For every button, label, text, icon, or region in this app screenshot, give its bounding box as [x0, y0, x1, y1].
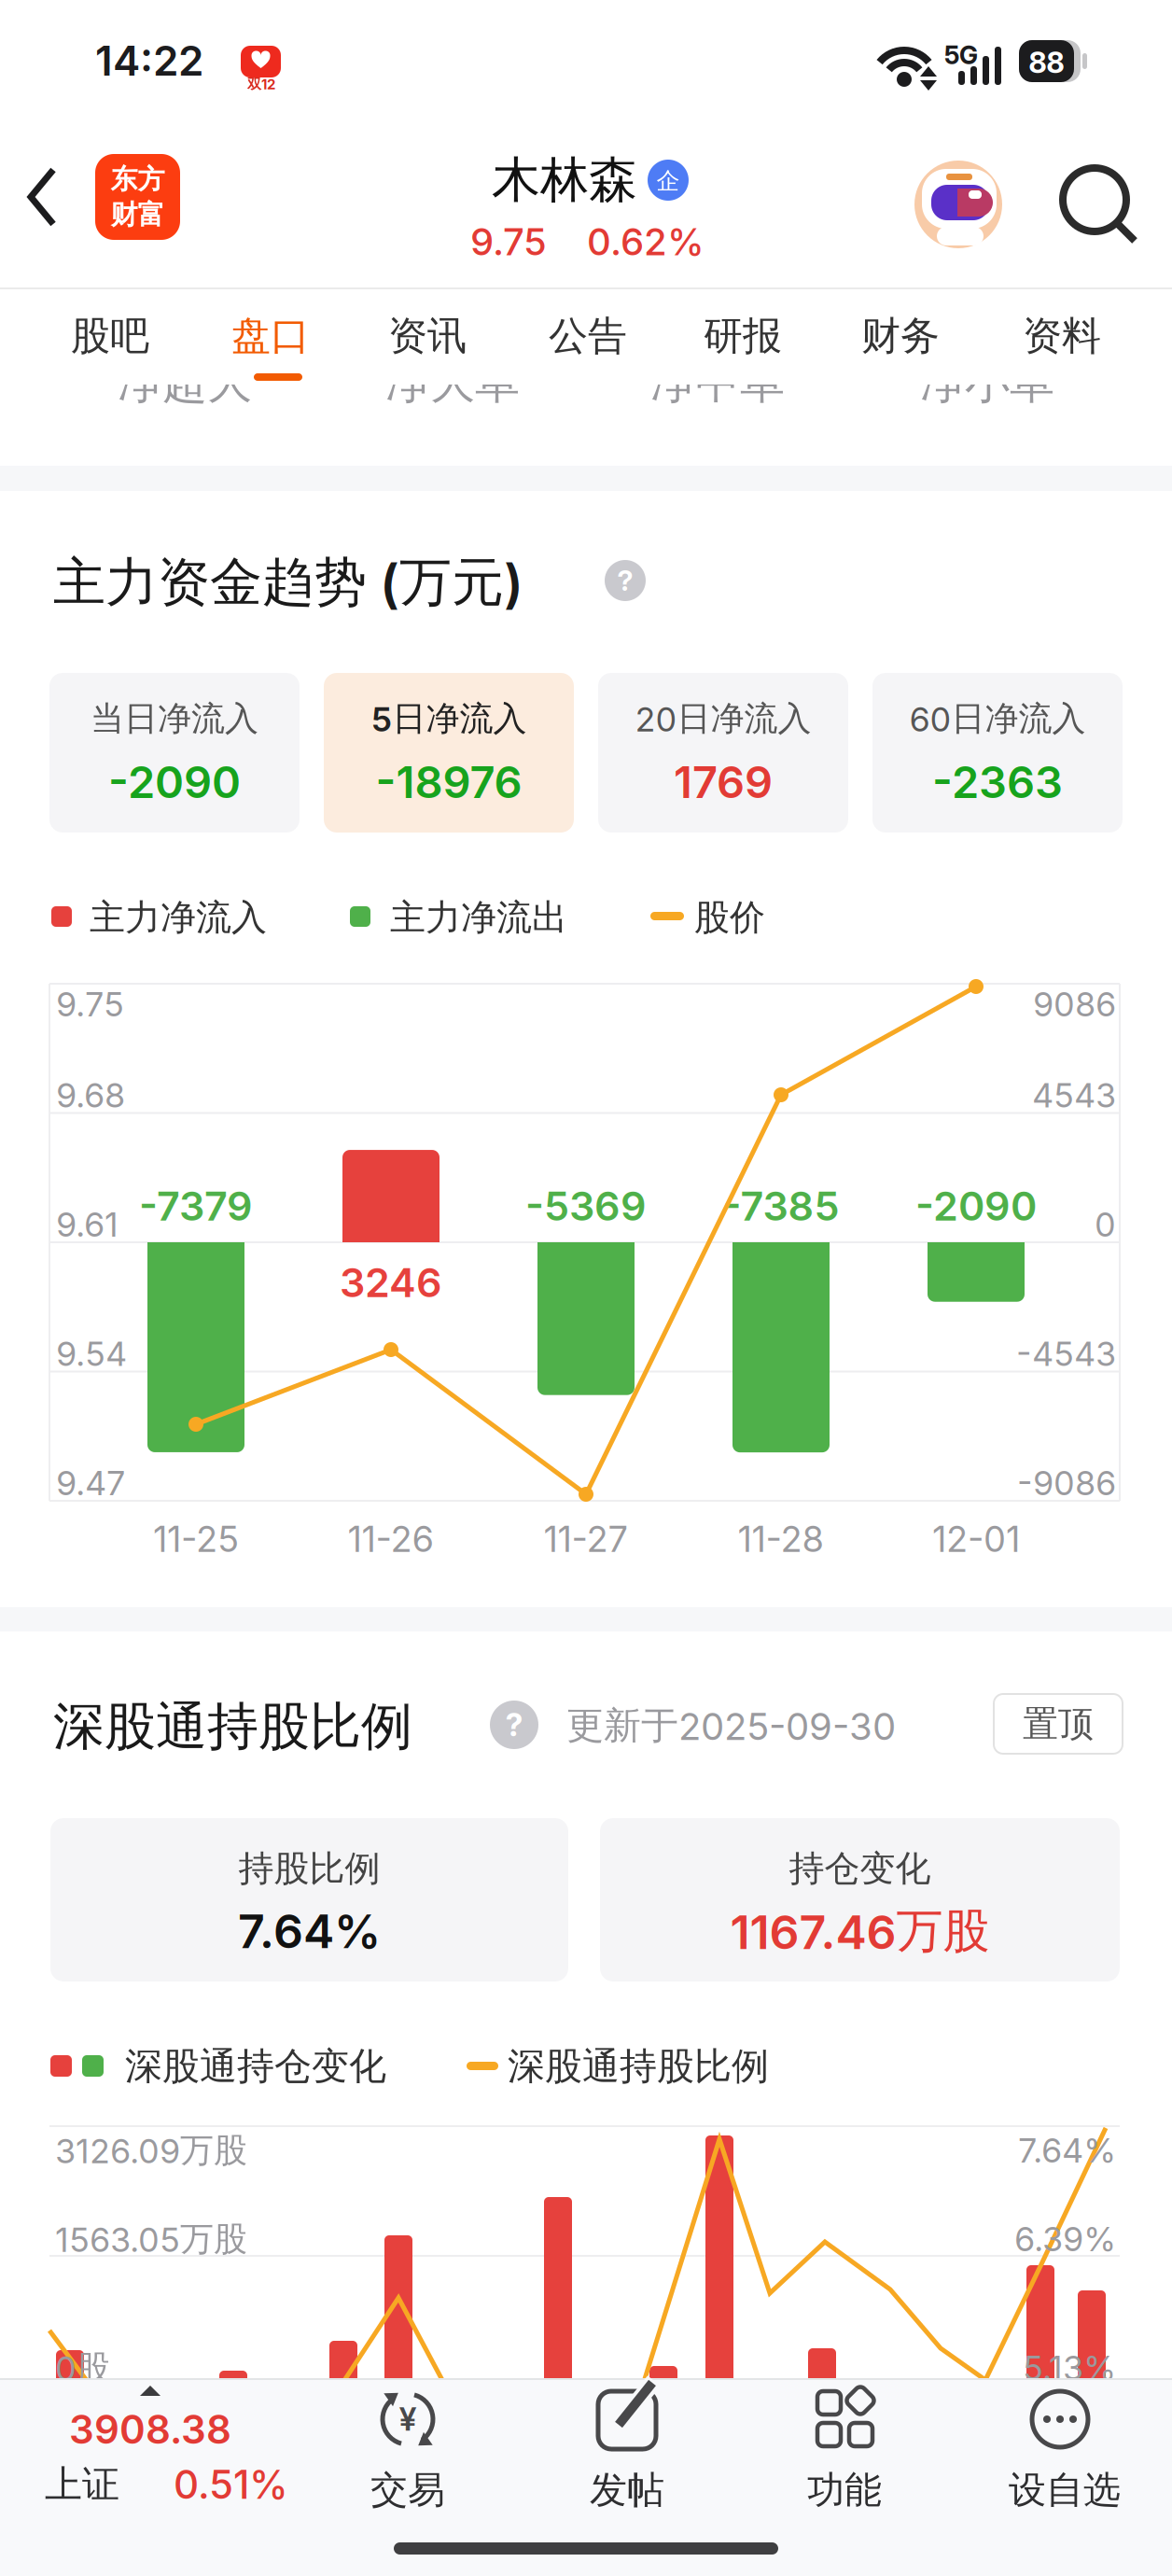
staticText: 9.47	[56, 1463, 125, 1503]
staticText: 交易	[370, 2467, 445, 2513]
staticText: 东方	[111, 163, 165, 196]
staticText: -18976	[376, 756, 522, 808]
staticText: ?	[617, 564, 633, 597]
staticText: 企	[656, 167, 680, 195]
staticText: 0股	[55, 2347, 110, 2388]
staticText: -7385	[723, 1182, 839, 1229]
button[interactable]: AI 助手	[0, 0, 1172, 2576]
staticText: 9.75	[56, 984, 124, 1024]
staticText: 11-26	[348, 1518, 434, 1560]
staticText: 净小单	[920, 355, 1054, 410]
staticText: 12-01	[932, 1518, 1020, 1560]
button[interactable]: 股吧	[0, 0, 1172, 2576]
staticText: 60日净流入	[909, 698, 1086, 739]
button[interactable]: 当日净流入	[0, 0, 1172, 2576]
staticText: -2090	[108, 756, 241, 808]
staticText: 持股比例	[238, 1847, 380, 1890]
button[interactable]: 5日净流入	[0, 0, 1172, 2576]
staticText: 深股通持股比例	[508, 2043, 769, 2089]
staticText: 7.64%	[238, 1904, 381, 1959]
staticText: 深股通持股比例	[53, 1695, 412, 1758]
staticText: 11-28	[738, 1518, 824, 1560]
staticText: 木林森	[492, 150, 637, 210]
staticText: 1167.46万股	[730, 1902, 990, 1960]
staticText: 3126.09万股	[55, 2130, 247, 2171]
staticText: 公告	[549, 312, 627, 360]
button[interactable]: ¥	[0, 0, 1172, 2576]
button[interactable]: 说明	[0, 0, 1172, 2576]
button[interactable]: 资讯	[0, 0, 1172, 2576]
staticText: 发帖	[590, 2467, 664, 2513]
staticText: -9086	[1017, 1463, 1116, 1503]
staticText: 9.61	[56, 1205, 119, 1244]
button[interactable]: 公告	[0, 0, 1172, 2576]
staticText: 当日净流入	[91, 698, 258, 739]
staticText: -2363	[932, 756, 1063, 808]
staticText: 0.62%	[587, 220, 705, 264]
staticText: 3246	[340, 1259, 442, 1306]
staticText: 3908.38	[69, 2406, 231, 2453]
staticText: 财富	[111, 198, 165, 231]
staticText: 11-25	[153, 1518, 239, 1560]
button[interactable]: 返回	[0, 0, 1172, 2576]
staticText: 净中单	[650, 355, 785, 410]
staticText: 20日净流入	[635, 698, 811, 739]
button[interactable]: 说明	[0, 0, 1172, 2576]
button[interactable]: 资料	[0, 0, 1172, 2576]
staticText: 5G	[944, 40, 978, 70]
staticText: 上证	[45, 2462, 119, 2507]
staticText: 9.68	[56, 1075, 125, 1115]
staticText: 股吧	[71, 312, 149, 360]
staticText: 净超大	[118, 355, 252, 410]
staticText: 功能	[807, 2467, 882, 2513]
staticText: 设自选	[1009, 2467, 1121, 2513]
button[interactable]: 搜索	[0, 0, 1172, 2576]
button[interactable]: 20日净流入	[0, 0, 1172, 2576]
button[interactable]: 功能	[0, 0, 1172, 2576]
staticText: 净大单	[385, 355, 520, 410]
staticText: 6.39%	[1014, 2219, 1116, 2259]
button[interactable]: 财务	[0, 0, 1172, 2576]
staticText: 1563.05万股	[55, 2218, 247, 2260]
staticText: 14:22	[95, 36, 203, 85]
button[interactable]: 3908.38	[0, 0, 1172, 2576]
staticText: -4543	[1016, 1334, 1116, 1374]
staticText: 更新于2025-09-30	[566, 1703, 896, 1749]
staticText: 研报	[704, 312, 782, 360]
staticText: 1769	[674, 756, 773, 808]
staticText: ?	[505, 1706, 523, 1743]
button[interactable]: 设自选	[0, 0, 1172, 2576]
staticText: 主力净流出	[390, 896, 567, 939]
staticText: 盘口	[231, 312, 310, 360]
staticText: 4543	[1032, 1075, 1116, 1115]
staticText: 资料	[1023, 312, 1101, 360]
button[interactable]: 发帖	[0, 0, 1172, 2576]
staticText: -2090	[915, 1182, 1037, 1229]
staticText: 深股通持仓变化	[125, 2043, 386, 2089]
staticText: -5369	[525, 1182, 647, 1229]
button[interactable]: 置顶	[0, 0, 1172, 2576]
button[interactable]: 60日净流入	[0, 0, 1172, 2576]
staticText: 持仓变化	[789, 1847, 931, 1890]
staticText: 主力资金趋势 (万元)	[53, 550, 523, 615]
staticText: 股价	[694, 896, 765, 939]
staticText: 资讯	[388, 312, 467, 360]
staticText: 财务	[861, 312, 940, 360]
staticText: 双12	[247, 75, 275, 93]
staticText: 0.51%	[174, 2461, 288, 2508]
staticText: 置顶	[1023, 1702, 1094, 1746]
button[interactable]: 研报	[0, 0, 1172, 2576]
staticText: 9.54	[56, 1334, 127, 1374]
staticText: -7379	[139, 1182, 253, 1229]
staticText: ¥	[399, 2400, 417, 2438]
staticText: 11-27	[544, 1518, 628, 1560]
staticText: 主力净流入	[90, 896, 267, 939]
staticText: 0	[1095, 1205, 1116, 1244]
staticText: 9086	[1033, 984, 1116, 1024]
staticText: 7.64%	[1018, 2131, 1116, 2170]
staticText: 5日净流入	[371, 698, 527, 739]
staticText: 88	[1029, 45, 1064, 80]
button[interactable]: 盘口	[0, 0, 1172, 2576]
staticText: 9.75	[470, 220, 547, 264]
staticText: 5.13%	[1023, 2348, 1116, 2388]
